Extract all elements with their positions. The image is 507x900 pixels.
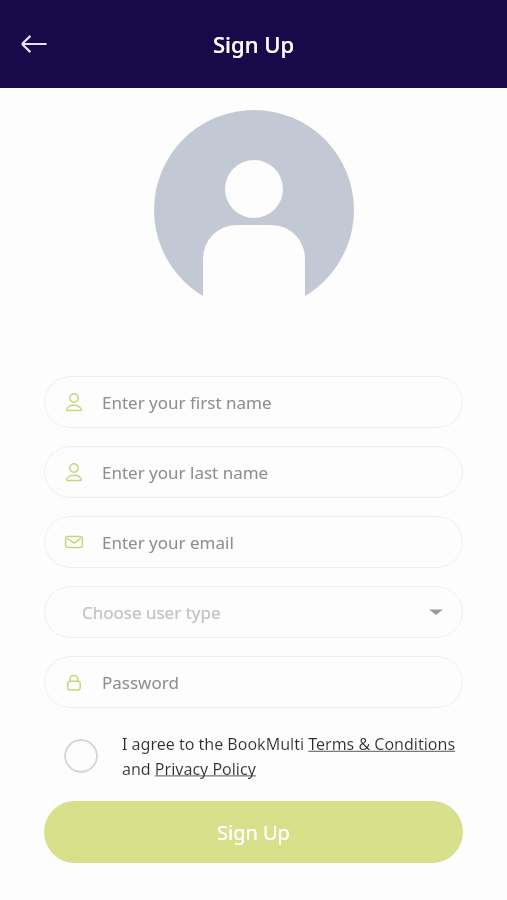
button[interactable]: Enter your last name xyxy=(44,446,463,498)
staticText: Enter your last name xyxy=(102,461,269,484)
button[interactable]: Choose user type xyxy=(44,586,463,638)
button[interactable]: Sign Up xyxy=(44,801,463,863)
staticText: Choose user type xyxy=(82,601,221,624)
staticText: Password xyxy=(102,671,179,694)
staticText: Sign Up xyxy=(217,819,290,846)
staticText: I agree to the BookMulti Terms & Conditi… xyxy=(122,733,467,779)
button[interactable]: Back xyxy=(6,16,62,72)
staticText: Enter your first name xyxy=(102,391,272,414)
button[interactable]: Enter your first name xyxy=(44,376,463,428)
button[interactable]: Enter your email xyxy=(44,516,463,568)
other: Agree to terms xyxy=(64,739,98,773)
button[interactable]: Agree to terms xyxy=(64,733,467,779)
staticText: Sign Up xyxy=(213,29,295,59)
button[interactable]: Password xyxy=(44,656,463,708)
staticText: Enter your email xyxy=(102,531,234,554)
